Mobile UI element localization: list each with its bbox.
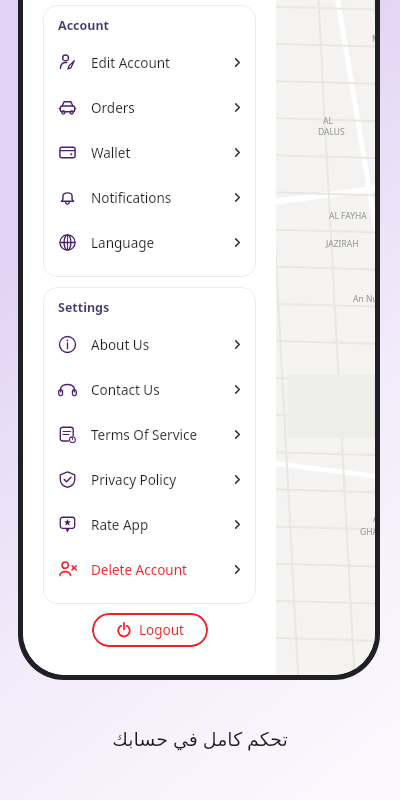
staticText: Notifications [91, 189, 172, 207]
button[interactable]: Language [43, 220, 256, 265]
staticText: AL [373, 513, 375, 525]
button[interactable]: Privacy Policy [43, 457, 256, 502]
button[interactable]: Delete Account [43, 547, 256, 592]
staticText: AL FAYHA [329, 210, 367, 222]
button[interactable]: About Us [43, 322, 256, 367]
button[interactable]: Contact Us [43, 367, 256, 412]
staticText: DALUS [318, 126, 345, 138]
staticText: Orders [91, 99, 135, 117]
staticText: Wallet [91, 144, 131, 162]
button[interactable]: Logout [92, 613, 208, 647]
staticText: Settings [58, 299, 110, 316]
button[interactable]: Notifications [43, 175, 256, 220]
staticText: Privacy Policy [91, 471, 177, 489]
staticText: About Us [91, 336, 150, 354]
staticText: Logout [139, 621, 184, 639]
staticText: Account [58, 17, 110, 34]
staticText: Edit Account [91, 54, 170, 72]
staticText: Delete Account [91, 561, 187, 579]
staticText: AL [323, 115, 333, 127]
button[interactable]: Rate App [43, 502, 256, 547]
staticText: Language [91, 234, 155, 252]
button[interactable]: Edit Account [43, 40, 256, 85]
button[interactable]: Orders [43, 85, 256, 130]
staticText: تحكم كامل في حسابك [112, 726, 288, 752]
button[interactable]: Terms Of Service [43, 412, 256, 457]
staticText: JAZIRAH [326, 238, 359, 250]
staticText: Contact Us [91, 381, 160, 399]
staticText: Rate App [91, 516, 149, 534]
staticText: An Nur [353, 293, 375, 305]
staticText: GHANNAM [360, 526, 375, 538]
staticText: Terms Of Service [91, 426, 198, 444]
staticText: M [372, 33, 375, 45]
button[interactable]: Wallet [43, 130, 256, 175]
